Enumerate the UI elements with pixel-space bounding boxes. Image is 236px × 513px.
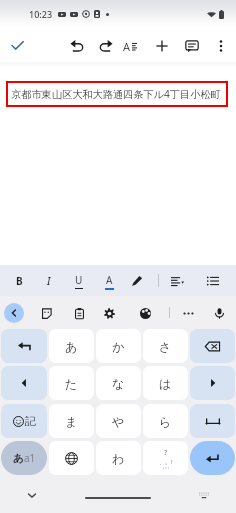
staticText: た — [65, 376, 78, 391]
staticText: a1 — [24, 451, 36, 465]
staticText: か — [112, 339, 125, 354]
button[interactable]: Underline — [69, 271, 89, 291]
button[interactable]: ま — [49, 404, 94, 438]
button[interactable]: Hide keyboard — [24, 487, 40, 503]
button[interactable]: Undo — [66, 35, 87, 56]
button[interactable]: Insert — [151, 35, 172, 56]
staticText: 京都市東山区大和大路通四条下ル4丁目小松町 — [11, 87, 221, 101]
button[interactable]: emoji — [1, 404, 47, 438]
button[interactable]: globe — [49, 441, 94, 475]
button[interactable]: Bold — [9, 271, 29, 291]
button[interactable]: わ — [96, 441, 141, 475]
button[interactable]: Done — [6, 34, 28, 56]
button[interactable]: Text colour — [99, 271, 119, 291]
button[interactable]: や — [96, 404, 141, 438]
button[interactable]: ret — [1, 329, 47, 363]
button[interactable]: た — [49, 366, 94, 400]
staticText: な — [112, 376, 125, 391]
button[interactable]: Stickers — [37, 304, 55, 322]
button[interactable]: enter — [190, 441, 235, 475]
staticText: B — [16, 274, 23, 288]
button[interactable]: は — [143, 366, 188, 400]
staticText: は — [159, 376, 172, 391]
button[interactable]: Voice input — [210, 304, 228, 322]
button[interactable]: Highlight — [127, 271, 147, 291]
staticText: あ — [65, 339, 78, 354]
button[interactable]: Theme — [136, 304, 154, 322]
staticText: U — [75, 273, 83, 287]
staticText: ら — [159, 414, 172, 429]
button[interactable]: bs — [190, 329, 235, 363]
button[interactable]: Settings — [100, 304, 118, 322]
staticText: さ — [159, 339, 172, 354]
staticText: I — [47, 274, 51, 288]
button[interactable]: Back — [4, 303, 24, 323]
button[interactable]: Switch keyboard — [196, 487, 212, 503]
button[interactable]: left — [1, 366, 47, 400]
button[interactable]: Text formatting — [119, 35, 140, 56]
staticText: 記 — [25, 414, 36, 428]
staticText: や — [112, 414, 125, 429]
button[interactable]: さ — [143, 329, 188, 363]
button[interactable]: More options — [210, 35, 231, 56]
button[interactable]: Clipboard — [70, 304, 88, 322]
staticText: ま — [65, 414, 78, 429]
button[interactable]: Redo — [95, 35, 116, 56]
staticText: ? — [164, 448, 168, 458]
button[interactable]: Alignment — [167, 271, 187, 291]
button[interactable]: More — [179, 304, 197, 322]
button[interactable]: space — [190, 404, 235, 438]
staticText: 10:23 — [29, 8, 53, 20]
staticText: あ — [13, 452, 24, 465]
button[interactable]: ら — [143, 404, 188, 438]
button[interactable]: mode — [1, 441, 47, 475]
staticText: 、。! — [159, 458, 173, 466]
staticText: A — [123, 39, 131, 53]
staticText: A — [106, 273, 113, 287]
button[interactable]: あ — [49, 329, 94, 363]
button[interactable]: punct — [143, 441, 188, 475]
button[interactable]: Comment — [181, 35, 202, 56]
button[interactable]: な — [96, 366, 141, 400]
button[interactable]: Bulleted list — [203, 271, 223, 291]
button[interactable]: right — [190, 366, 235, 400]
staticText: わ — [112, 451, 125, 466]
button[interactable]: Italic — [39, 271, 59, 291]
button[interactable]: か — [96, 329, 141, 363]
